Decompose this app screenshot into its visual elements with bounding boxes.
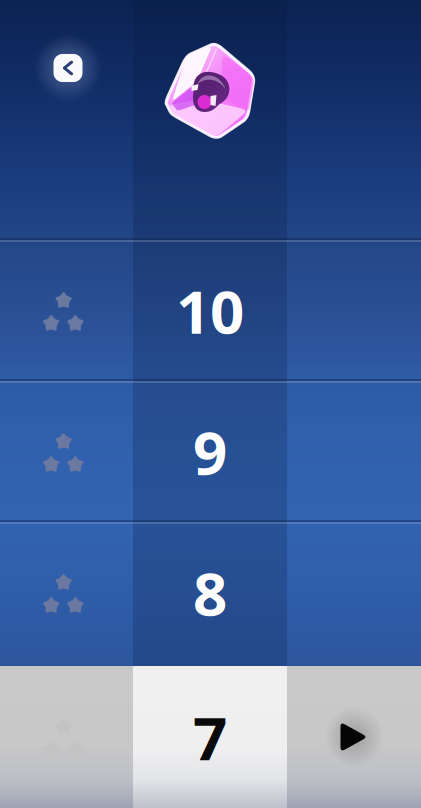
button[interactable]: Level 9 [133, 381, 287, 522]
staticText: 9 [193, 412, 227, 491]
button[interactable]: Level 7 [133, 666, 287, 808]
staticText: 8 [193, 553, 227, 632]
button[interactable]: Level 8 [133, 522, 287, 663]
staticText: 7 [193, 697, 227, 777]
button[interactable]: Level 8 [287, 522, 421, 663]
button[interactable]: Play level 7 [287, 666, 421, 808]
button[interactable]: Level 10 [287, 240, 421, 381]
button[interactable]: Back [46, 46, 90, 90]
button[interactable]: Level 9: 3 stars [0, 381, 133, 522]
button[interactable]: Level 8: 3 stars [0, 522, 133, 663]
button[interactable]: Level 9 [287, 381, 421, 522]
button[interactable]: Level 10: 3 stars [0, 240, 133, 381]
button[interactable]: Level 7: 3 stars [0, 666, 133, 808]
button[interactable]: Level 10 [133, 240, 287, 381]
staticText: 10 [176, 271, 244, 350]
